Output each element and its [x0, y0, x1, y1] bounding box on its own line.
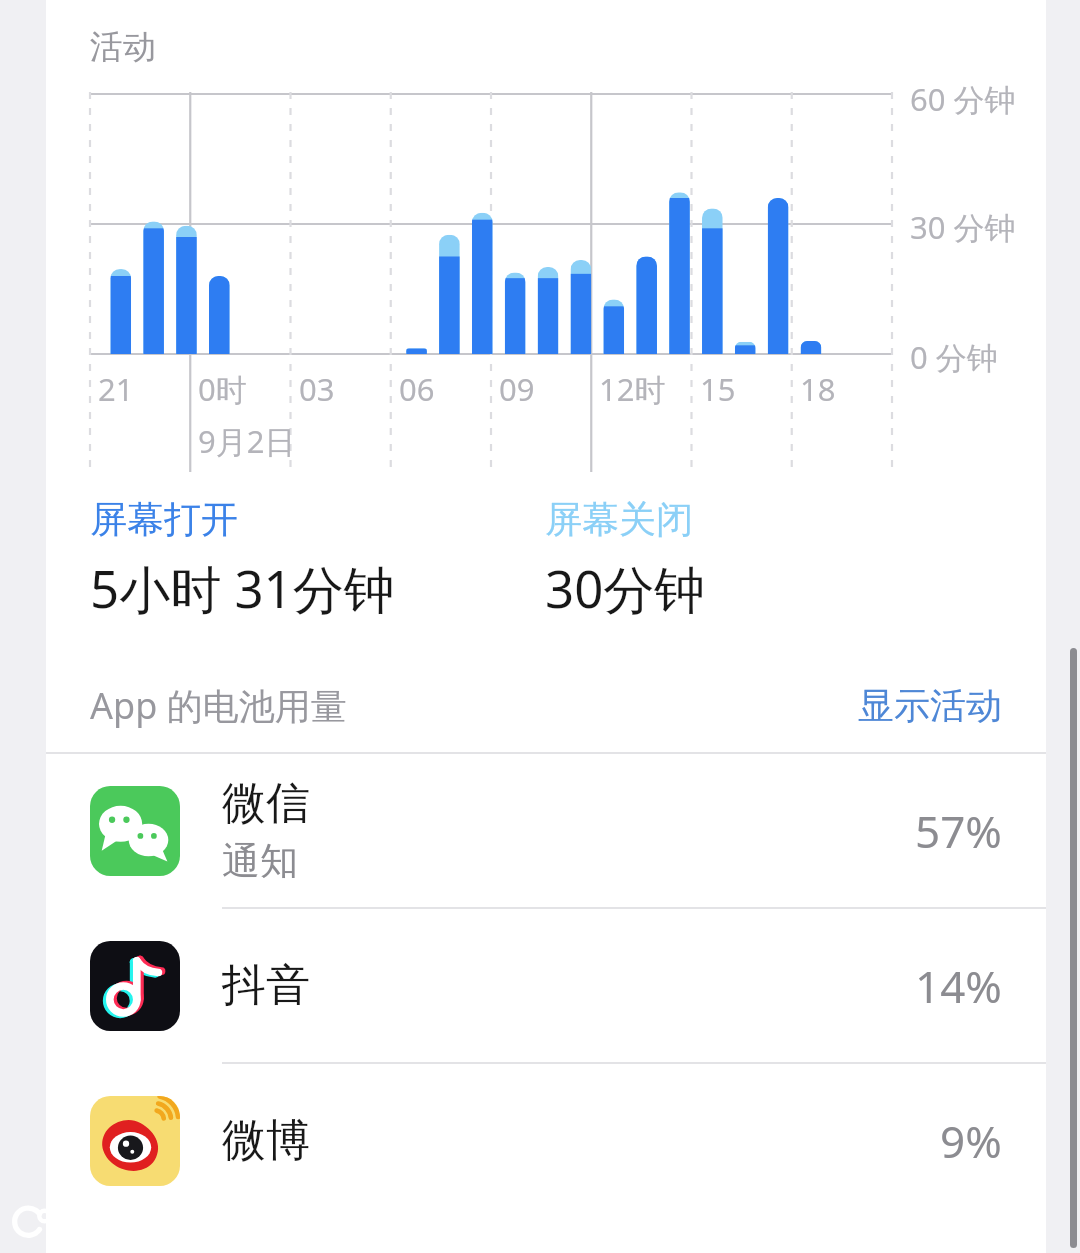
button[interactable]: 微信: [46, 754, 1046, 907]
staticText: 06: [399, 368, 435, 410]
staticText: 0 分钟: [910, 336, 998, 378]
staticText: 30分钟: [545, 553, 706, 623]
staticText: 活动: [90, 26, 156, 68]
staticText: 60 分钟: [910, 78, 1016, 120]
staticText: 14%: [915, 956, 1002, 1016]
staticText: 03: [299, 368, 335, 410]
other: 微信: [90, 786, 180, 876]
button[interactable]: 微博: [46, 1064, 1046, 1217]
staticText: 15: [700, 368, 736, 410]
staticText: 显示活动: [858, 683, 1002, 728]
staticText: 0时: [198, 368, 247, 410]
staticText: 通知: [222, 837, 298, 885]
staticText: 21: [98, 368, 134, 410]
staticText: 抖音: [222, 958, 310, 1013]
staticText: 12时: [599, 368, 666, 410]
staticText: 18: [800, 368, 836, 410]
staticText: 微信: [222, 776, 310, 831]
staticText: 屏幕关闭: [545, 496, 693, 543]
staticText: 屏幕打开: [90, 496, 238, 543]
staticText: 09: [499, 368, 535, 410]
staticText: 30 分钟: [910, 206, 1016, 248]
other: 抖音: [90, 941, 180, 1031]
button[interactable]: 显示活动: [858, 683, 1002, 728]
staticText: 5小时 31分钟: [90, 553, 395, 623]
staticText: App 的电池用量: [90, 681, 347, 730]
staticText: 微博: [222, 1113, 310, 1168]
staticText: 57%: [915, 801, 1002, 861]
button[interactable]: 抖音: [46, 909, 1046, 1062]
staticText: 9月2日: [198, 420, 296, 462]
other: 微博: [90, 1096, 180, 1186]
staticText: 9%: [940, 1111, 1002, 1171]
